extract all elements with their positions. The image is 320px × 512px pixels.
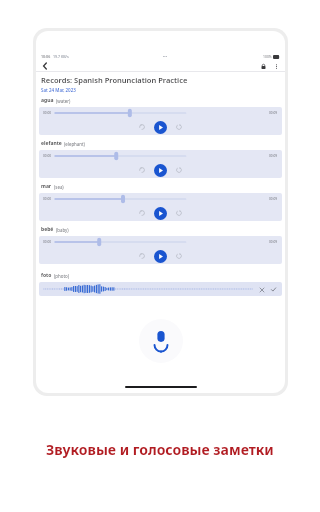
button[interactable]: Rewind 10 seconds [136, 121, 148, 133]
staticText: 00:09 [269, 240, 278, 244]
button[interactable]: Forward 10 seconds [173, 121, 185, 133]
staticText: 00:09 [269, 111, 278, 115]
staticText: 00:09 [269, 197, 278, 201]
button[interactable]: Rewind 10 seconds [136, 207, 148, 219]
button[interactable]: Play [154, 250, 167, 263]
button[interactable]: Discard recording [257, 285, 266, 294]
button[interactable]: Forward 10 seconds [173, 250, 185, 262]
staticText: 10:06 [41, 54, 51, 59]
button[interactable]: Play [154, 121, 167, 134]
staticText: Records: Spanish Pronunciation Practice [41, 75, 188, 85]
staticText: foto [41, 272, 52, 279]
staticText: (water) [56, 98, 71, 104]
staticText: (elephant) [64, 141, 85, 147]
button[interactable]: Back [40, 61, 50, 71]
button[interactable]: Play [154, 164, 167, 177]
staticText: 00:00 [43, 111, 52, 115]
button[interactable]: Record voice note [139, 319, 183, 363]
staticText: Звуковые и голосовые заметки [46, 440, 274, 459]
staticText: 19.7 KB/s [53, 54, 69, 59]
staticText: 00:09 [269, 154, 278, 158]
button[interactable]: Save recording [269, 285, 278, 294]
button[interactable]: Lock [258, 61, 268, 71]
button[interactable]: 00:00 [39, 150, 282, 178]
staticText: 00:00 [43, 197, 52, 201]
button[interactable]: 00:00 [39, 193, 282, 221]
staticText: ••• [163, 54, 168, 59]
button[interactable]: Discard recording [39, 282, 282, 296]
staticText: 00:00 [43, 240, 52, 244]
button[interactable]: Forward 10 seconds [173, 164, 185, 176]
staticText: 00:00 [43, 154, 52, 158]
staticText: Sat 24 Mar, 2023 [41, 87, 76, 93]
button[interactable]: More options [271, 61, 281, 71]
staticText: mar [41, 183, 52, 190]
staticText: (baby) [56, 227, 69, 233]
staticText: (photo) [54, 273, 69, 279]
button[interactable]: 00:00 [39, 107, 282, 135]
button[interactable]: 00:00 [39, 236, 282, 264]
button[interactable]: Rewind 10 seconds [136, 250, 148, 262]
button[interactable]: Play [154, 207, 167, 220]
staticText: elefante [41, 140, 62, 147]
staticText: 100% [263, 54, 272, 59]
button[interactable]: Forward 10 seconds [173, 207, 185, 219]
staticText: bebé [41, 226, 54, 233]
button[interactable]: Rewind 10 seconds [136, 164, 148, 176]
staticText: agua [41, 97, 54, 104]
staticText: (sea) [54, 184, 64, 190]
